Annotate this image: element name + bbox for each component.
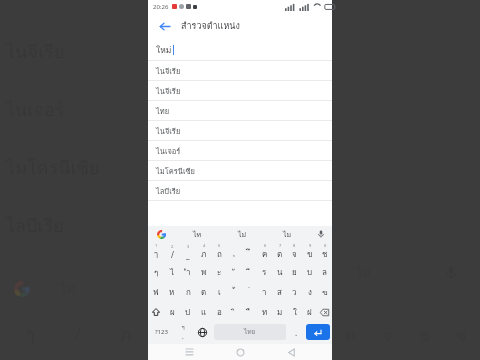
button[interactable]: ไนเจอร์ [148,141,332,160]
button[interactable]: 9 [302,242,317,262]
button[interactable]: 1 [148,242,164,262]
button[interactable]: 0 [317,242,332,262]
button[interactable]: ไ [164,262,180,282]
button[interactable]: ห [164,282,180,302]
button[interactable]: ไนจีเรีย [148,81,332,100]
button[interactable]: ไท [174,226,220,242]
button[interactable]: Back [281,344,301,360]
button[interactable]: า [257,282,272,302]
button[interactable]: ไลบีเรีย [148,181,332,200]
button[interactable]: ฝ [302,302,317,322]
button[interactable]: Google [148,226,174,242]
button[interactable]: ุ [227,242,242,262]
button[interactable]: ผ [164,302,180,322]
button[interactable]: 7 [272,242,287,262]
button[interactable]: . [288,322,304,342]
button[interactable]: ๆ [148,262,164,282]
staticText: 9 [309,243,312,248]
button[interactable]: ไม [265,226,310,242]
button[interactable]: ไนจีเรีย [148,121,332,140]
button[interactable]: Voice input [310,226,332,242]
staticText: ไนเจอร์ [156,145,181,157]
button[interactable]: Shift [148,302,164,322]
button[interactable]: พ [196,262,212,282]
button[interactable]: Home [230,344,250,360]
staticText: 2 [171,244,174,249]
button[interactable]: ไมโครนีเซีย [148,161,332,180]
staticText: / [171,249,174,260]
button[interactable]: ป [180,302,196,322]
staticText: 7 [279,243,282,248]
staticText: 8 [293,243,296,248]
button[interactable]: Back [154,16,174,36]
staticText: ไทย [156,105,170,117]
button[interactable]: ฯ , [174,322,192,342]
staticText: 20:26 [153,3,169,11]
button[interactable]: Change language [192,322,212,342]
staticText: ช [322,248,328,261]
button[interactable]: ว [287,282,302,302]
button[interactable]: ึ [242,242,257,262]
staticText: ไทย [244,327,256,337]
staticText: ว [292,286,297,299]
button[interactable]: ะ [212,262,227,282]
button[interactable]: 8 [287,242,302,262]
button[interactable]: 2 [164,242,180,262]
button[interactable]: อ [212,302,227,322]
button[interactable]: ก [180,282,196,302]
button[interactable]: Enter [306,324,330,340]
staticText: ฃ [322,286,328,299]
button[interactable]: ด [196,282,212,302]
staticText: ไม่ [238,229,247,240]
button[interactable]: บ [302,262,317,282]
button[interactable]: Backspace [317,302,332,322]
button[interactable]: ่ [242,282,257,302]
button[interactable]: ส [272,282,287,302]
staticText: ๅ [154,248,158,261]
button[interactable]: ้ [227,282,242,302]
button[interactable]: ิ [227,302,242,322]
button[interactable]: ?123 [148,322,174,342]
staticText: ข [307,248,313,261]
button[interactable]: ี [242,262,257,282]
button[interactable]: ำ [180,262,196,282]
button[interactable]: แ [196,302,212,322]
staticText: ไมโครนีเซีย [156,165,195,177]
staticText: 4 [203,243,206,248]
staticText: ฯ , [181,324,185,340]
button[interactable]: ื [242,302,257,322]
button[interactable]: ม [272,302,287,322]
staticText: . [295,327,298,338]
button[interactable]: ง [302,282,317,302]
button[interactable]: ใ [287,302,302,322]
staticText: ฟ [153,286,159,299]
staticText: บ [307,266,313,279]
button[interactable]: ไทย [148,101,332,120]
button[interactable]: ั [227,262,242,282]
button[interactable]: 5 [212,242,227,262]
button[interactable]: น [272,262,287,282]
button[interactable]: ย [287,262,302,282]
button[interactable]: ไม่ [220,226,265,242]
button[interactable]: ไทย [214,324,286,340]
button[interactable]: ฃ [317,282,332,302]
staticText: ไ [170,266,175,279]
staticText: ป [185,306,191,319]
button[interactable]: ใหม่ [148,39,332,60]
button[interactable]: 3 [180,242,196,262]
button[interactable]: Recents [179,344,199,360]
staticText: ไนจีเรีย [156,85,181,97]
button[interactable]: เ [212,282,227,302]
button[interactable]: ท [257,302,272,322]
button[interactable]: ไนจีเรีย [148,61,332,80]
button[interactable]: 4 [196,242,212,262]
button[interactable]: ล [317,262,332,282]
button[interactable]: ร [257,262,272,282]
button[interactable]: 6 [257,242,272,262]
button[interactable]: ฟ [148,282,164,302]
staticText: ค [262,248,268,261]
